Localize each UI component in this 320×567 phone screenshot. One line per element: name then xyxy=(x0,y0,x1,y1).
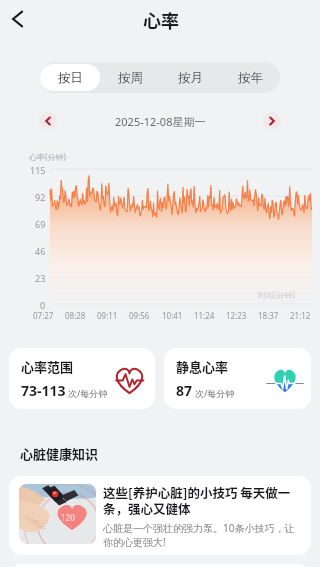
staticText: 92 xyxy=(35,191,46,203)
staticText: 这些[养护心脏]的小技巧 每天做一条，强心又健体 xyxy=(103,483,302,517)
staticText: 07:27 xyxy=(33,310,54,321)
staticText: 按日 xyxy=(58,70,83,86)
staticText: 21:12 xyxy=(290,310,311,321)
staticText: 0 xyxy=(40,299,46,311)
staticText: 按周 xyxy=(118,70,143,86)
staticText: 73-113 xyxy=(21,381,66,400)
staticText: 18:37 xyxy=(258,310,279,321)
button[interactable]: 按月 xyxy=(160,64,220,91)
staticText: 心率(分钟) xyxy=(29,151,66,162)
staticText: 心率范围 xyxy=(21,357,74,376)
staticText: 次/每分钟 xyxy=(68,387,108,399)
button[interactable]: 心率范围 xyxy=(9,348,155,409)
staticText: 按月 xyxy=(178,70,203,86)
staticText: 静息心率 xyxy=(176,357,229,376)
staticText: 10:41 xyxy=(162,310,183,321)
staticText: 2025-12-08星期一 xyxy=(115,114,206,129)
button[interactable]: Next day xyxy=(263,112,281,130)
staticText: 46 xyxy=(35,245,46,257)
button[interactable]: Previous day xyxy=(39,112,57,130)
staticText: 心率 xyxy=(143,7,179,33)
staticText: 115 xyxy=(30,164,46,176)
staticText: 次/每分钟 xyxy=(195,387,235,399)
button[interactable]: 按年 xyxy=(220,64,280,91)
staticText: 120 xyxy=(61,512,75,523)
button[interactable]: Back xyxy=(2,4,32,34)
button[interactable]: 120 xyxy=(9,476,311,555)
staticText: 12:23 xyxy=(226,310,247,321)
staticText: 23 xyxy=(35,272,46,284)
staticText: 69 xyxy=(35,218,46,230)
staticText: 87 xyxy=(176,381,193,400)
staticText: 09:11 xyxy=(97,310,118,321)
staticText: 09:56 xyxy=(129,310,150,321)
staticText: 心脏是一个强壮的强力泵。10条小技巧，让你的心更强大! xyxy=(103,521,302,549)
staticText: 心脏健康知识 xyxy=(20,444,99,463)
staticText: 11:24 xyxy=(194,310,215,321)
staticText: 按年 xyxy=(238,70,263,86)
staticText: 08:28 xyxy=(65,310,86,321)
button[interactable]: 按周 xyxy=(100,64,160,91)
button[interactable]: 按日 xyxy=(40,64,100,91)
button[interactable]: 静息心率 xyxy=(164,348,311,409)
staticText: 时间(分钟) xyxy=(258,289,295,300)
